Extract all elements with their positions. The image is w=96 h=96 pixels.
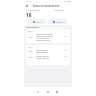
button[interactable]: Back [25, 4, 28, 7]
staticText: 08-24 [28, 30, 33, 32]
staticText: Grocery delivery [36, 55, 49, 57]
staticText: Utility provider [36, 51, 48, 53]
staticText: Auto pay monthly [36, 39, 51, 41]
staticText: 18 [26, 12, 32, 18]
staticText: Account management [33, 4, 60, 7]
staticText: Top up [36, 21, 42, 23]
staticText: Weekly fresh box [36, 57, 50, 59]
staticText: Subscription renewal [36, 33, 53, 35]
staticText: Detail [28, 56, 36, 58]
button[interactable]: Back [35, 89, 40, 94]
button[interactable]: Recent apps [54, 89, 59, 94]
staticText: Available balance [26, 9, 41, 11]
staticText: Card ending 4821 [36, 37, 51, 39]
staticText: Detail [28, 36, 36, 38]
button[interactable]: Transactions [54, 9, 65, 11]
button[interactable]: 08-21 [26, 45, 70, 65]
staticText: Transfer [56, 21, 63, 23]
staticText: Transactions [26, 26, 39, 29]
staticText: 08-21 [28, 46, 33, 48]
staticText: Detail [28, 50, 36, 52]
staticText: Electric bill June [36, 49, 49, 51]
staticText: 10:24 [26, 0, 31, 3]
button[interactable]: 08-24 [26, 29, 70, 43]
staticText: Transactions [54, 9, 65, 11]
button[interactable]: Home [45, 89, 50, 94]
staticText: Premium annual plan [36, 35, 54, 37]
button[interactable]: Transfer [48, 19, 67, 24]
button[interactable]: Top up [28, 19, 46, 24]
